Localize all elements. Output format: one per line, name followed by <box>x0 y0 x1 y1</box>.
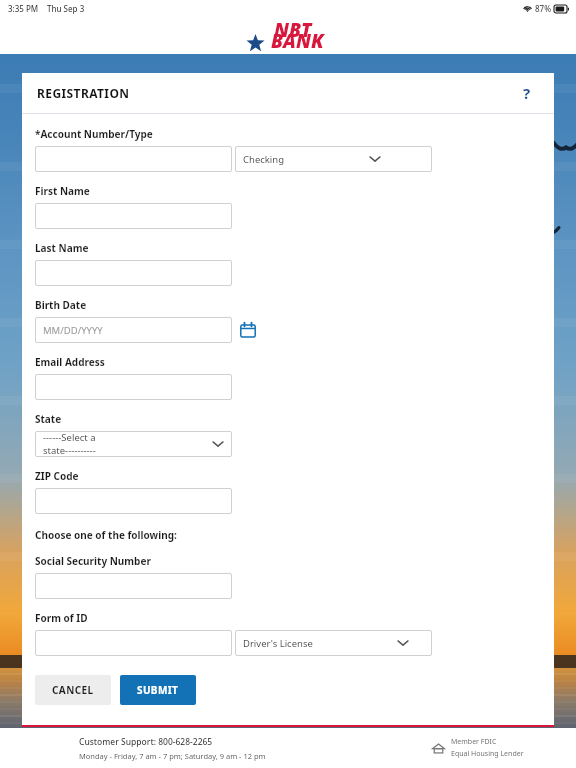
staticText: ? <box>523 83 531 103</box>
staticText: Customer Support: 800-628-2265 <box>79 736 213 748</box>
staticText: First Name <box>35 184 90 198</box>
staticText: Birth Date <box>35 298 87 312</box>
button[interactable]: Help <box>515 81 539 105</box>
staticText: Checking <box>243 153 285 166</box>
button[interactable]: Pick date <box>240 322 256 338</box>
staticText: *Account Number/Type <box>35 127 153 141</box>
button[interactable] <box>35 573 232 599</box>
button[interactable] <box>35 260 232 286</box>
button[interactable] <box>35 374 232 400</box>
staticText: Monday - Friday, 7 am - 7 pm; Saturday, … <box>79 751 266 761</box>
button[interactable] <box>35 203 232 229</box>
staticText: NBT <box>274 17 312 43</box>
staticText: SUBMIT <box>137 683 179 697</box>
staticText: ------Select a state---------- <box>43 431 128 457</box>
staticText: Form of ID <box>35 611 88 625</box>
button[interactable]: MM/DD/YYYY <box>35 317 232 343</box>
button[interactable]: ------Select a state---------- <box>35 431 232 457</box>
button[interactable] <box>35 146 232 172</box>
staticText: Driver's License <box>243 637 313 650</box>
staticText: State <box>35 412 62 426</box>
staticText: Social Security Number <box>35 554 151 568</box>
staticText: Email Address <box>35 355 105 369</box>
staticText: Member FDIC <box>451 737 497 747</box>
button[interactable] <box>35 488 232 514</box>
staticText: MM/DD/YYYY <box>43 324 103 337</box>
button[interactable]: CANCEL <box>35 675 111 705</box>
staticText: Equal Housing Lender <box>451 749 524 759</box>
staticText: 87% <box>535 3 551 14</box>
staticText: Thu Sep 3 <box>47 3 85 14</box>
staticText: Last Name <box>35 241 89 255</box>
button[interactable]: Checking <box>235 146 432 172</box>
staticText: CANCEL <box>52 683 94 697</box>
button[interactable]: Driver's License <box>235 630 432 656</box>
staticText: REGISTRATION <box>37 85 130 101</box>
staticText: BANK <box>271 28 324 54</box>
button[interactable]: SUBMIT <box>120 675 196 705</box>
staticText: Choose one of the following: <box>35 528 177 542</box>
staticText: ZIP Code <box>35 469 79 483</box>
button[interactable] <box>35 630 232 656</box>
staticText: 3:35 PM <box>8 3 39 14</box>
